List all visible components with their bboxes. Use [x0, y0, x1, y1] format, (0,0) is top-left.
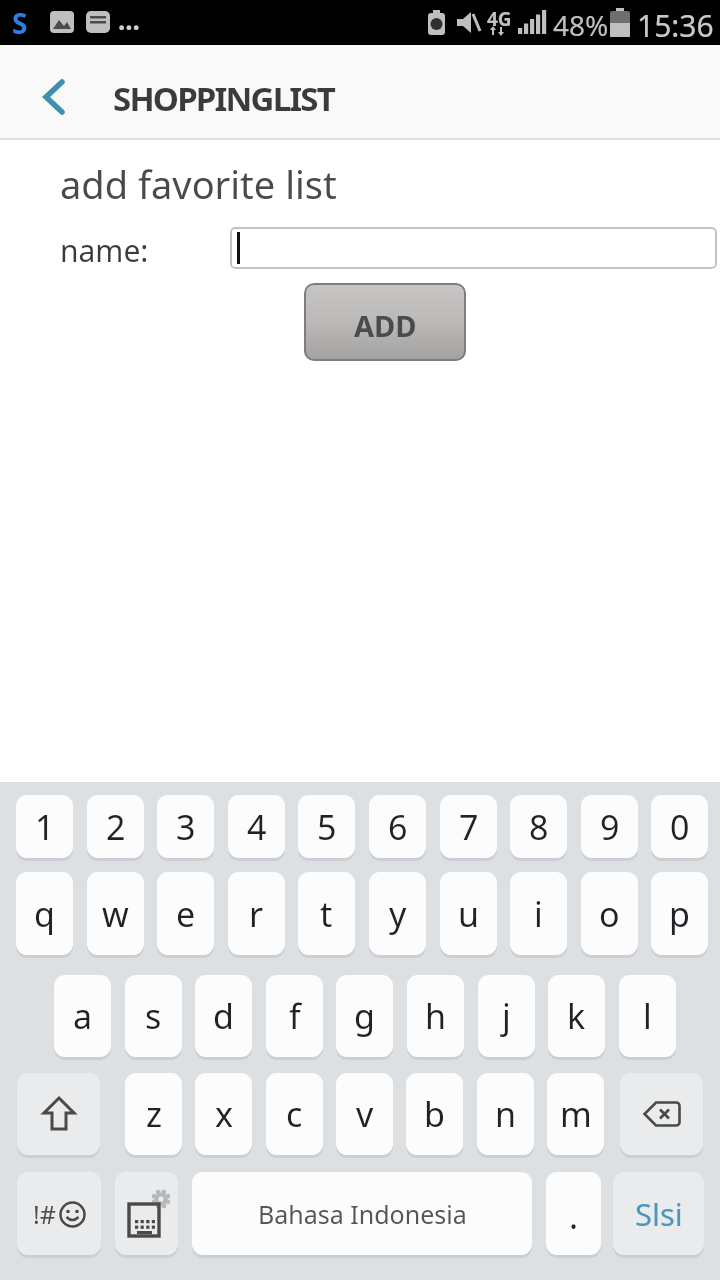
staticText: k — [567, 993, 586, 1039]
staticText: z — [146, 1091, 162, 1137]
staticText: Bahasa Indonesia — [258, 1197, 467, 1231]
button[interactable]: 7 — [440, 795, 497, 858]
button[interactable]: !# — [17, 1172, 101, 1255]
staticText: n — [495, 1091, 517, 1137]
button[interactable]: k — [548, 975, 605, 1057]
staticText: m — [560, 1091, 592, 1137]
staticText: 4G — [487, 6, 512, 32]
button[interactable]: y — [369, 872, 426, 955]
button[interactable]: w — [87, 872, 144, 955]
button[interactable]: x — [195, 1073, 252, 1155]
staticText: o — [599, 891, 620, 937]
button[interactable]: 4 — [228, 795, 285, 858]
button[interactable]: 2 — [87, 795, 144, 858]
button[interactable]: g — [336, 975, 393, 1057]
staticText: 5 — [317, 804, 337, 850]
button[interactable]: 3 — [157, 795, 214, 858]
button[interactable] — [17, 1073, 100, 1155]
staticText: 4 — [247, 804, 267, 850]
button[interactable]: ADD — [304, 283, 466, 361]
button[interactable] — [30, 73, 78, 121]
button[interactable] — [620, 1073, 703, 1155]
staticText: g — [354, 993, 375, 1039]
button[interactable]: j — [478, 975, 535, 1057]
staticText: 9 — [600, 804, 620, 850]
staticText: add favorite list — [60, 158, 337, 210]
button[interactable]: 0 — [651, 795, 708, 858]
staticText: c — [286, 1091, 303, 1137]
button[interactable]: Bahasa Indonesia — [192, 1172, 532, 1255]
button[interactable]: 1 — [16, 795, 73, 858]
button[interactable]: n — [477, 1073, 534, 1155]
staticText: 8 — [529, 804, 549, 850]
staticText: S — [12, 4, 28, 42]
button[interactable] — [115, 1172, 178, 1255]
staticText: u — [458, 891, 480, 937]
button[interactable]: e — [157, 872, 214, 955]
staticText: 48% — [553, 6, 609, 44]
button[interactable]: b — [406, 1073, 463, 1155]
staticText: 2 — [106, 804, 126, 850]
staticText: ... — [118, 2, 140, 37]
button[interactable]: t — [298, 872, 355, 955]
staticText: e — [176, 891, 196, 937]
button[interactable]: u — [440, 872, 497, 955]
staticText: y — [389, 891, 407, 937]
staticText: !# — [33, 1197, 56, 1231]
staticText: t — [320, 891, 333, 937]
button[interactable]: s — [125, 975, 182, 1057]
button[interactable]: a — [54, 975, 111, 1057]
button[interactable]: h — [407, 975, 464, 1057]
button[interactable]: i — [510, 872, 567, 955]
button[interactable]: r — [228, 872, 285, 955]
staticText: 7 — [459, 804, 479, 850]
staticText: w — [102, 891, 129, 937]
staticText: 0 — [670, 804, 690, 850]
staticText: s — [145, 993, 162, 1039]
staticText: h — [425, 993, 447, 1039]
staticText: SHOPPINGLIST — [113, 76, 334, 121]
staticText: 1 — [35, 804, 55, 850]
staticText: x — [215, 1091, 233, 1137]
staticText: b — [424, 1091, 445, 1137]
staticText: j — [502, 993, 511, 1039]
button[interactable]: d — [195, 975, 252, 1057]
button[interactable]: m — [547, 1073, 604, 1155]
staticText: . — [569, 1193, 579, 1239]
staticText: v — [356, 1091, 374, 1137]
staticText: 6 — [388, 804, 408, 850]
button[interactable]: . — [546, 1172, 601, 1255]
staticText: name: — [60, 230, 149, 271]
button[interactable]: 5 — [298, 795, 355, 858]
staticText: a — [73, 993, 93, 1039]
staticText: 3 — [176, 804, 196, 850]
button[interactable]: 6 — [369, 795, 426, 858]
button[interactable]: p — [651, 872, 708, 955]
staticText: l — [643, 993, 652, 1039]
staticText: 15:36 — [637, 5, 714, 46]
button[interactable]: z — [125, 1073, 182, 1155]
button[interactable]: 9 — [581, 795, 638, 858]
staticText: ADD — [354, 306, 417, 345]
button[interactable]: Slsi — [613, 1172, 704, 1255]
staticText: Slsi — [635, 1193, 683, 1235]
button[interactable]: q — [16, 872, 73, 955]
staticText: i — [534, 891, 543, 937]
button[interactable]: c — [266, 1073, 323, 1155]
staticText: d — [213, 993, 234, 1039]
button[interactable]: f — [266, 975, 323, 1057]
button[interactable]: o — [581, 872, 638, 955]
staticText: r — [249, 891, 264, 937]
button[interactable]: v — [336, 1073, 393, 1155]
staticText: p — [669, 891, 690, 937]
button[interactable] — [230, 227, 717, 269]
button[interactable]: 8 — [510, 795, 567, 858]
staticText: f — [289, 993, 301, 1039]
button[interactable]: l — [619, 975, 676, 1057]
staticText: q — [34, 891, 55, 937]
